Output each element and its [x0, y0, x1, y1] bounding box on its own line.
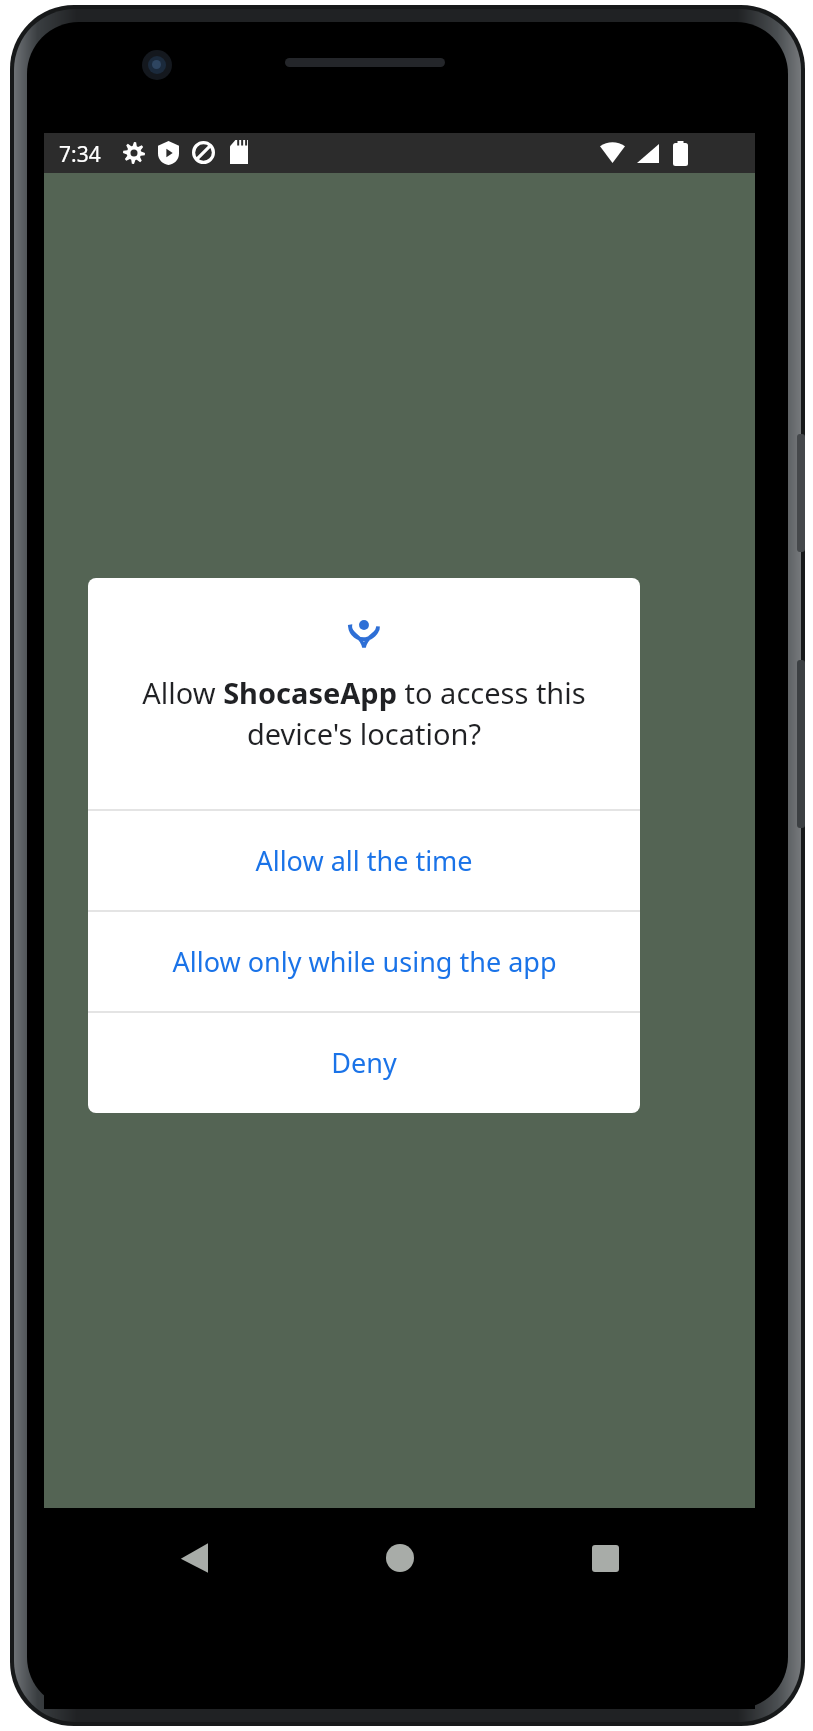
staticText: Deny — [331, 1044, 397, 1081]
staticText: Allow only while using the app — [172, 943, 557, 980]
button[interactable]: Home — [360, 1518, 440, 1598]
button[interactable]: Back — [154, 1518, 234, 1598]
staticText: Allow ShocaseApp to access this device's… — [114, 673, 614, 754]
button[interactable]: Allow only while using the app — [88, 912, 640, 1011]
button[interactable]: Allow all the time — [88, 811, 640, 910]
staticText: Allow all the time — [255, 842, 473, 879]
staticText: 7:34 — [59, 140, 101, 169]
button[interactable]: Recent apps — [565, 1518, 645, 1598]
button[interactable]: Deny — [88, 1013, 640, 1112]
